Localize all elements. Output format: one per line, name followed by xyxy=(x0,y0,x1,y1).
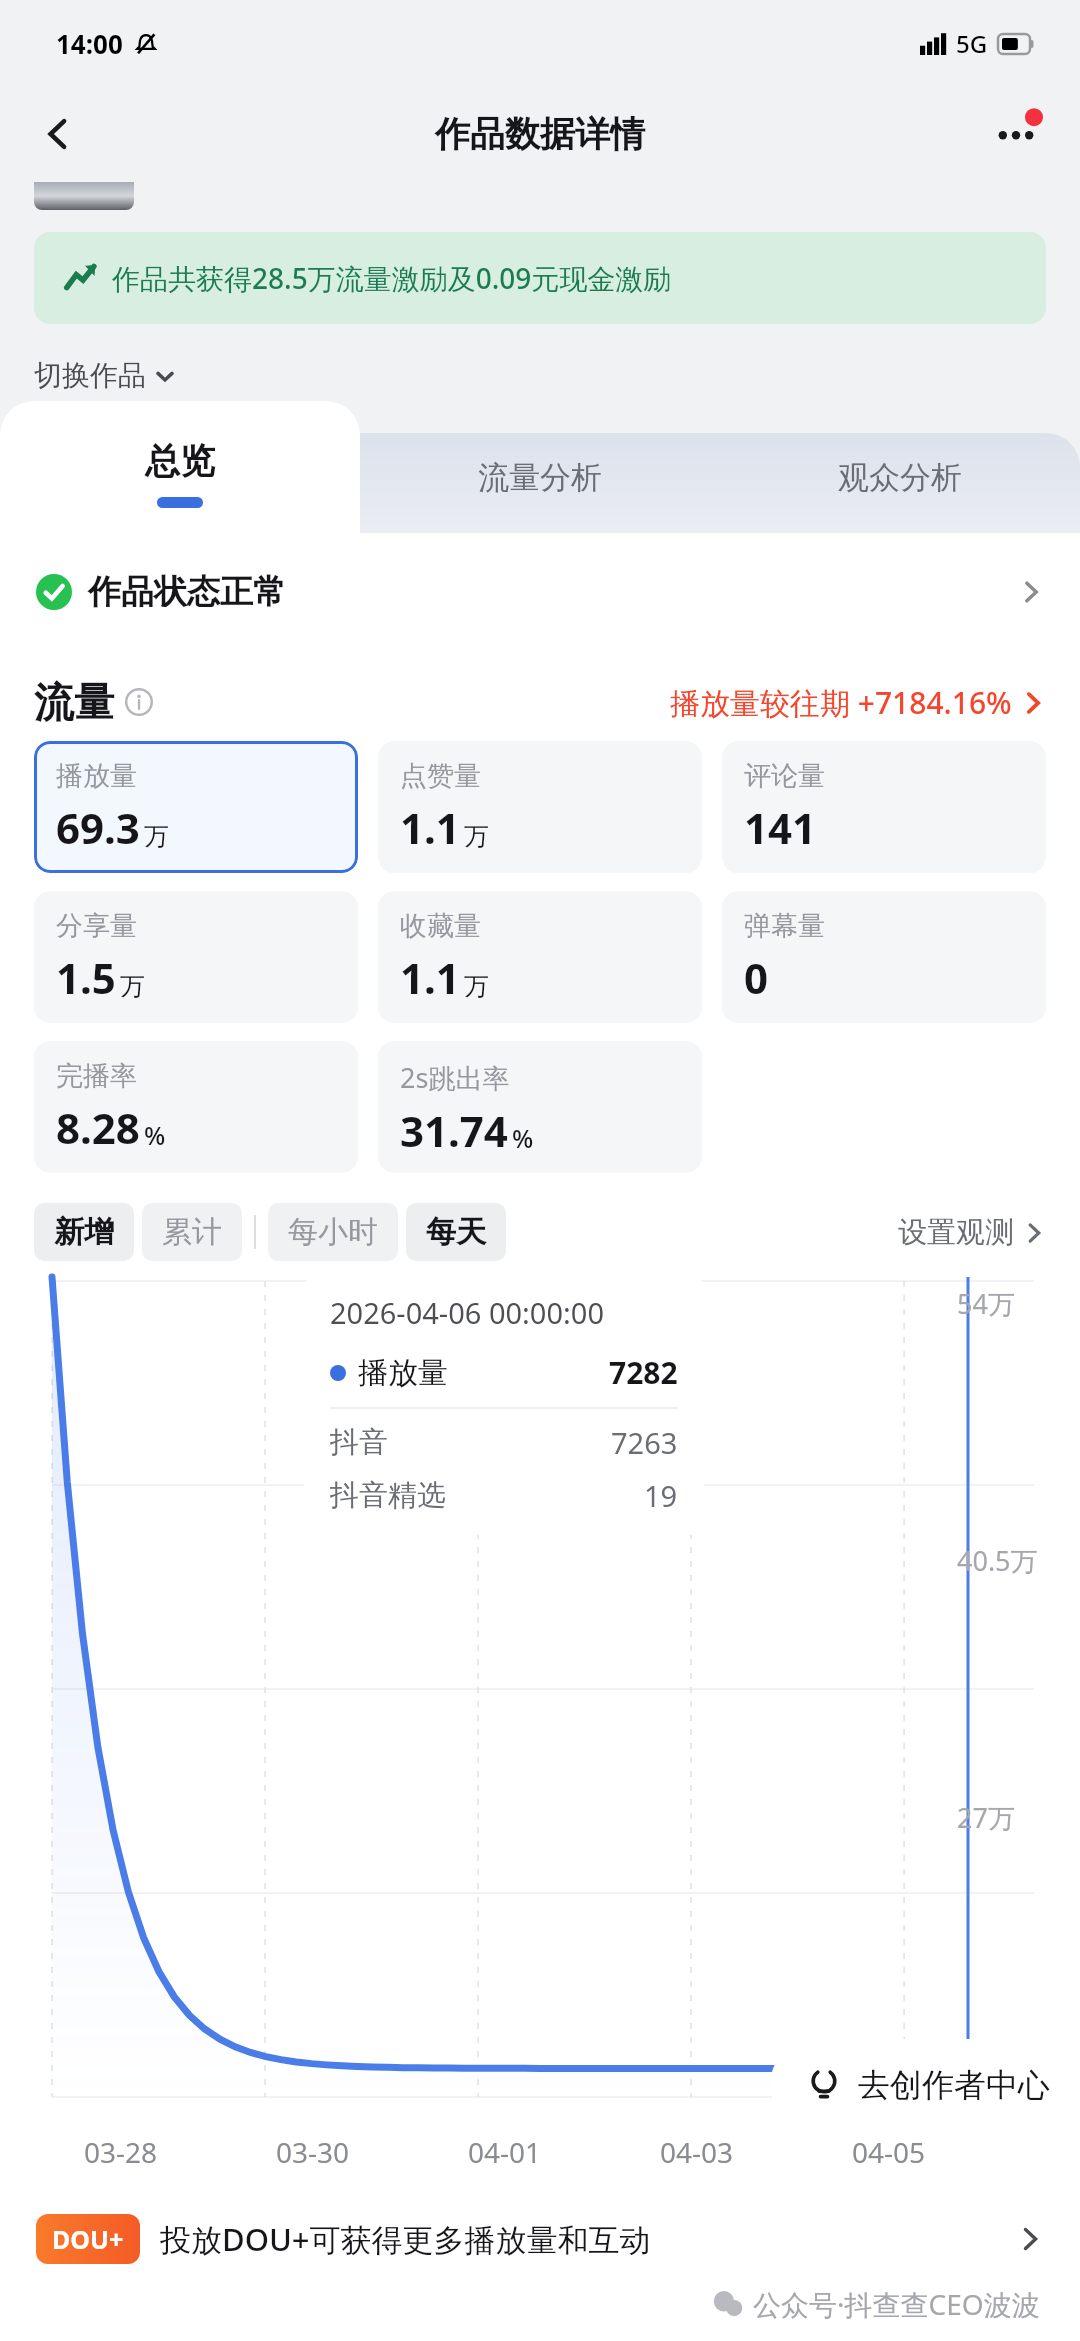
staticText: 投放DOU+可获得更多播放量和互动 xyxy=(160,2218,651,2260)
staticText: 播放量 xyxy=(56,759,137,793)
button[interactable]: 流量分析 xyxy=(360,401,720,533)
button[interactable]: 总览 xyxy=(0,401,360,533)
staticText: 收藏量 xyxy=(400,909,481,943)
staticText: 弹幕量 xyxy=(744,909,825,943)
button[interactable]: 作品状态正常 xyxy=(0,533,1080,651)
button[interactable]: 点赞量 xyxy=(378,741,702,873)
staticText: 播放量较往期 +7184.16% xyxy=(670,682,1012,723)
staticText: 公众号·抖查查CEO波波 xyxy=(753,2285,1040,2323)
staticText: 万 xyxy=(464,971,489,1002)
staticText: 累计 xyxy=(162,1213,222,1251)
staticText: 54万 xyxy=(957,1285,1015,1322)
staticText: 总览 xyxy=(145,439,215,483)
staticText: 7282 xyxy=(609,1352,678,1393)
staticText: 04-05 xyxy=(852,2133,926,2171)
button[interactable]: Back xyxy=(22,98,94,170)
staticText: 27万 xyxy=(957,1799,1015,1836)
staticText: 流量 xyxy=(34,677,114,727)
button[interactable]: 每天 xyxy=(406,1203,506,1261)
staticText: 去创作者中心 xyxy=(858,2065,1050,2105)
button[interactable]: 观众分析 xyxy=(720,401,1080,533)
button[interactable]: 累计 xyxy=(142,1203,242,1261)
staticText: 04-01 xyxy=(468,2133,542,2171)
staticText: 万 xyxy=(120,971,145,1002)
staticText: 作品数据详情 xyxy=(435,112,645,156)
staticText: 完播率 xyxy=(56,1059,137,1093)
staticText: 作品共获得28.5万流量激励及0.09元现金激励 xyxy=(112,259,672,297)
staticText: 1.1 xyxy=(400,799,460,856)
staticText: 141 xyxy=(744,799,817,856)
button[interactable]: Info xyxy=(124,687,154,717)
staticText: 0 xyxy=(744,949,769,1006)
button[interactable]: Video thumbnail xyxy=(34,182,134,210)
staticText: 设置观测 xyxy=(898,1214,1014,1251)
staticText: 评论量 xyxy=(744,759,825,793)
staticText: 8.28 xyxy=(56,1099,140,1156)
button[interactable]: 完播率 xyxy=(34,1041,358,1173)
button[interactable]: 分享量 xyxy=(34,891,358,1023)
staticText: 抖音精选 xyxy=(330,1477,446,1514)
staticText: 04-03 xyxy=(660,2133,734,2171)
button[interactable]: 每小时 xyxy=(268,1203,398,1261)
button[interactable]: 弹幕量 xyxy=(722,891,1046,1023)
staticText: 每小时 xyxy=(288,1213,378,1251)
staticText: 31.74 xyxy=(400,1102,508,1159)
staticText: 分享量 xyxy=(56,909,137,943)
staticText: 5G xyxy=(956,27,988,60)
staticText: 03-28 xyxy=(84,2133,158,2171)
staticText: 03-30 xyxy=(276,2133,350,2171)
staticText: 万 xyxy=(144,821,169,852)
staticText: 40.5万 xyxy=(957,1542,1038,1579)
button[interactable]: DOU+ xyxy=(0,2193,1080,2285)
button[interactable]: 切换作品 xyxy=(34,358,176,393)
button[interactable]: 播放量 xyxy=(34,741,358,873)
staticText: 观众分析 xyxy=(838,458,962,497)
staticText: 每天 xyxy=(426,1213,486,1251)
staticText: 2s跳出率 xyxy=(400,1059,510,1096)
button[interactable]: More options xyxy=(980,98,1052,170)
staticText: 万 xyxy=(464,821,489,852)
staticText: 14:00 xyxy=(56,26,123,61)
staticText: 13.5万 xyxy=(957,2056,1038,2093)
staticText: 流量分析 xyxy=(478,458,602,497)
staticText: 作品状态正常 xyxy=(88,571,286,613)
button[interactable]: 作品共获得28.5万流量激励及0.09元现金激励 xyxy=(34,232,1046,324)
staticText: DOU+ xyxy=(52,2222,124,2256)
staticText: 抖音 xyxy=(330,1424,388,1461)
staticText: 播放量 xyxy=(358,1354,448,1392)
staticText: % xyxy=(512,1121,534,1155)
button[interactable]: 设置观测 xyxy=(898,1214,1046,1251)
button[interactable]: 收藏量 xyxy=(378,891,702,1023)
staticText: 1.1 xyxy=(400,949,460,1006)
staticText: 点赞量 xyxy=(400,759,481,793)
staticText: 69.3 xyxy=(56,799,140,856)
button[interactable]: 新增 xyxy=(34,1203,134,1261)
staticText: 19 xyxy=(644,1476,678,1515)
button[interactable]: 2s跳出率 xyxy=(378,1041,702,1173)
staticText: 新增 xyxy=(54,1213,114,1251)
button[interactable]: 播放量较往期 +7184.16% xyxy=(670,682,1046,723)
staticText: 2026-04-06 00:00:00 xyxy=(330,1293,604,1332)
button[interactable]: 去创作者中心 xyxy=(770,2039,1080,2131)
staticText: 1.5 xyxy=(56,949,116,1006)
staticText: 7263 xyxy=(611,1423,678,1462)
staticText: % xyxy=(144,1118,166,1152)
staticText: 切换作品 xyxy=(34,358,146,393)
button[interactable]: 评论量 xyxy=(722,741,1046,873)
